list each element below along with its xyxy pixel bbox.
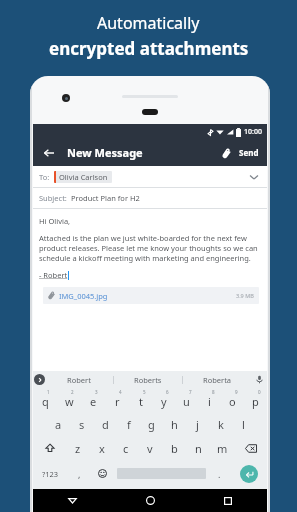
staticText: n: [195, 441, 202, 456]
button[interactable]: a: [46, 412, 70, 436]
button[interactable]: c: [114, 436, 138, 460]
staticText: l: [242, 417, 245, 432]
button[interactable]: Roberta: [183, 371, 251, 388]
staticText: e: [90, 394, 97, 409]
button[interactable]: k: [209, 412, 232, 436]
button[interactable]: n: [186, 436, 210, 460]
staticText: New Message: [67, 145, 143, 160]
button[interactable]: .: [208, 460, 231, 487]
button[interactable]: IMG_0045.jpg: [43, 287, 259, 304]
button[interactable]: Back: [33, 489, 111, 512]
staticText: z: [75, 441, 81, 456]
staticText: ?123: [42, 469, 59, 479]
button[interactable]: Send: [239, 147, 259, 158]
button[interactable]: Backspace: [234, 436, 267, 460]
staticText: a: [55, 417, 62, 432]
staticText: 5: [143, 389, 146, 395]
button[interactable]: To:: [33, 166, 267, 187]
button[interactable]: 2: [57, 388, 81, 412]
staticText: 3: [95, 389, 98, 395]
button[interactable]: j: [186, 412, 209, 436]
staticText: 7: [189, 389, 192, 395]
button[interactable]: Back: [39, 143, 59, 163]
staticText: t: [139, 394, 143, 409]
button[interactable]: Expand recipients: [245, 168, 263, 186]
staticText: Roberta: [203, 375, 232, 385]
button[interactable]: ,: [68, 460, 91, 487]
button[interactable]: 0: [244, 388, 267, 412]
staticText: 1: [47, 389, 50, 395]
button[interactable]: f: [117, 412, 140, 436]
staticText: ,: [78, 468, 81, 480]
staticText: c: [123, 441, 129, 456]
button[interactable]: l: [232, 412, 255, 436]
button[interactable]: 6: [152, 388, 175, 412]
button[interactable]: 4: [105, 388, 129, 412]
staticText: j: [196, 417, 199, 432]
button[interactable]: z: [66, 436, 90, 460]
staticText: To:: [39, 172, 50, 182]
button[interactable]: Attach file: [215, 142, 237, 164]
staticText: b: [171, 441, 178, 456]
button[interactable]: Roberts: [114, 371, 182, 388]
staticText: 0: [258, 389, 261, 395]
staticText: Olivia Carlson: [59, 172, 108, 182]
staticText: Hi Olivia,: [39, 216, 71, 226]
staticText: 8: [212, 389, 215, 395]
button[interactable]: 7: [175, 388, 198, 412]
button[interactable]: 8: [198, 388, 221, 412]
button[interactable]: Home: [111, 489, 189, 512]
button[interactable]: Shift: [33, 436, 66, 460]
staticText: 4: [119, 389, 122, 395]
staticText: 10:00: [244, 127, 262, 137]
button[interactable]: d: [94, 412, 117, 436]
staticText: d: [102, 417, 109, 432]
button[interactable]: g: [140, 412, 163, 436]
button[interactable]: Subject:: [33, 188, 267, 208]
button[interactable]: x: [90, 436, 114, 460]
button[interactable]: Recent apps: [189, 489, 267, 512]
staticText: v: [147, 441, 153, 456]
staticText: m: [217, 441, 228, 456]
button[interactable]: Emoji: [91, 460, 114, 487]
staticText: 3.9 MB: [236, 292, 254, 299]
button[interactable]: 5: [129, 388, 152, 412]
button[interactable]: 1: [33, 388, 57, 412]
staticText: IMG_0045.jpg: [59, 291, 108, 301]
button[interactable]: Robert: [45, 371, 113, 388]
button[interactable]: Enter: [231, 460, 267, 487]
staticText: y: [161, 394, 167, 409]
staticText: u: [183, 394, 190, 409]
staticText: Roberts: [134, 375, 162, 385]
staticText: i: [208, 394, 211, 409]
staticText: s: [79, 417, 85, 432]
staticText: - Robert: [39, 270, 68, 280]
button[interactable]: 3: [81, 388, 105, 412]
button[interactable]: More suggestions: [34, 374, 45, 385]
button[interactable]: Voice input: [251, 371, 267, 388]
staticText: q: [42, 394, 49, 409]
button[interactable]: b: [162, 436, 186, 460]
staticText: r: [115, 394, 120, 409]
button[interactable]: v: [138, 436, 162, 460]
staticText: Send: [239, 147, 259, 158]
staticText: Product Plan for H2: [71, 193, 140, 203]
staticText: w: [65, 394, 74, 409]
button[interactable]: [114, 460, 208, 487]
button[interactable]: h: [163, 412, 186, 436]
button[interactable]: s: [70, 412, 94, 436]
staticText: p: [252, 394, 259, 409]
button[interactable]: ?123: [33, 460, 68, 487]
staticText: h: [171, 417, 178, 432]
staticText: o: [229, 394, 236, 409]
staticText: Attached is the plan we just white-board…: [39, 233, 261, 263]
button[interactable]: m: [210, 436, 234, 460]
staticText: 2: [71, 389, 74, 395]
staticText: k: [218, 417, 224, 432]
staticText: .: [218, 468, 221, 480]
staticText: Subject:: [39, 193, 67, 203]
staticText: 9: [235, 389, 238, 395]
button[interactable]: 9: [221, 388, 244, 412]
staticText: g: [148, 417, 155, 432]
staticText: f: [127, 417, 131, 432]
